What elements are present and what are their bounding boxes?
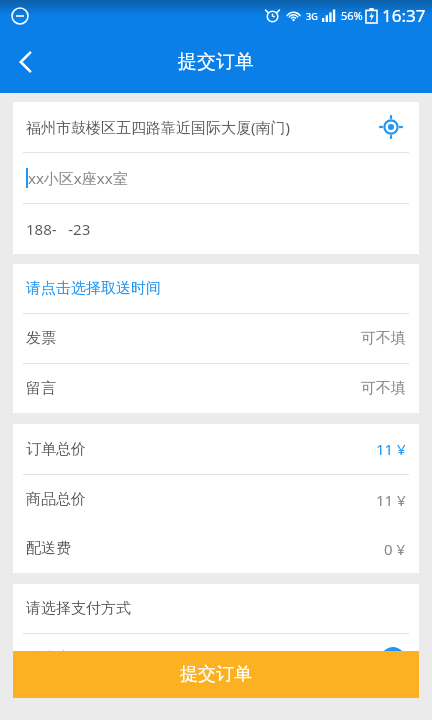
button[interactable]: 商品总价 (13, 475, 419, 524)
staticText: 留言 (26, 379, 56, 398)
staticText: 3G (306, 10, 318, 22)
button[interactable]: xx小区x座xx室 (13, 153, 419, 203)
staticText: 可不填 (361, 379, 406, 398)
button[interactable]: 福州市鼓楼区五四路靠近国际大厦(南门) (13, 102, 419, 152)
staticText: 商品总价 (26, 490, 86, 509)
staticText: 配送费 (26, 539, 71, 558)
staticText: 订单总价 (26, 440, 86, 459)
staticText: 在线支付 (26, 649, 86, 668)
staticText: xx小区x座xx室 (28, 168, 128, 188)
staticText: 提交订单 (180, 663, 252, 686)
button[interactable]: 配送费 (13, 524, 419, 573)
staticText: 11 ¥ (376, 490, 406, 510)
button[interactable]: 在线支付 (13, 634, 419, 683)
button[interactable]: Back (0, 36, 52, 88)
button[interactable]: 订单总价 (13, 424, 419, 474)
staticText: 请选择支付方式 (26, 599, 131, 618)
staticText: 188- -23 (26, 219, 91, 239)
staticText: 11 ¥ (376, 439, 406, 459)
staticText: 福州市鼓楼区五四路靠近国际大厦(南门) (26, 117, 291, 137)
staticText: 发票 (26, 329, 56, 348)
button[interactable]: 发票 (13, 314, 419, 363)
button[interactable]: 请点击选择取送时间 (13, 264, 419, 313)
staticText: 16:37 (382, 4, 426, 27)
staticText: 提交订单 (178, 50, 254, 74)
staticText: 请点击选择取送时间 (26, 279, 161, 298)
staticText: 可不填 (361, 329, 406, 348)
button[interactable]: 提交订单 (13, 651, 419, 698)
staticText: 56% (341, 8, 363, 23)
staticText: 0 ¥ (384, 539, 406, 559)
other: Online payment selected (380, 646, 406, 672)
button[interactable]: Locate me (376, 112, 406, 142)
button[interactable]: 留言 (13, 364, 419, 413)
button[interactable]: 请选择支付方式 (13, 584, 419, 633)
button[interactable]: 188- -23 (13, 204, 419, 254)
